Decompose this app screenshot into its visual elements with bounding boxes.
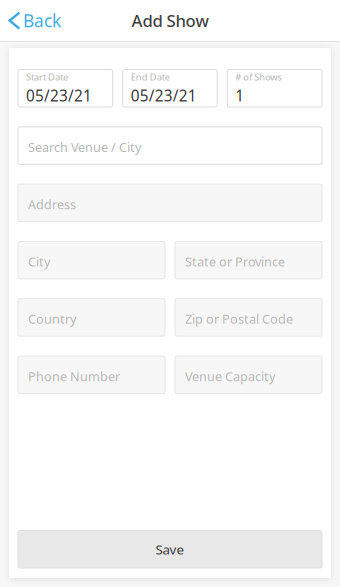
button[interactable]: City xyxy=(18,241,165,279)
staticText: # of Shows xyxy=(235,70,281,83)
staticText: Venue Capacity xyxy=(185,368,275,385)
button[interactable]: Save xyxy=(18,530,322,568)
staticText: 1 xyxy=(235,85,244,106)
button[interactable]: Zip or Postal Code xyxy=(175,299,322,336)
button[interactable]: State or Province xyxy=(175,241,322,279)
staticText: 05/23/21 xyxy=(131,85,197,106)
button[interactable]: Phone Number xyxy=(18,356,165,393)
staticText: End Date xyxy=(131,70,170,83)
staticText: City xyxy=(28,253,50,270)
button[interactable]: Country xyxy=(18,299,165,336)
staticText: State or Province xyxy=(185,253,285,270)
button[interactable]: Search Venue / City xyxy=(18,127,322,164)
staticText: Back xyxy=(23,9,61,32)
button[interactable]: Address xyxy=(18,184,322,222)
staticText: Address xyxy=(28,196,76,213)
staticText: Add Show xyxy=(131,9,208,32)
staticText: Start Date xyxy=(26,70,68,83)
staticText: Save xyxy=(155,540,184,558)
button[interactable]: # of Shows xyxy=(227,69,322,107)
staticText: Zip or Postal Code xyxy=(185,310,293,328)
button[interactable]: End Date xyxy=(123,69,217,107)
staticText: Phone Number xyxy=(28,368,120,385)
staticText: Country xyxy=(28,310,76,328)
button[interactable]: Venue Capacity xyxy=(175,356,322,393)
button[interactable]: Back xyxy=(0,4,71,37)
button[interactable]: Start Date xyxy=(18,69,113,107)
staticText: 05/23/21 xyxy=(26,85,92,106)
staticText: Search Venue / City xyxy=(28,138,141,156)
